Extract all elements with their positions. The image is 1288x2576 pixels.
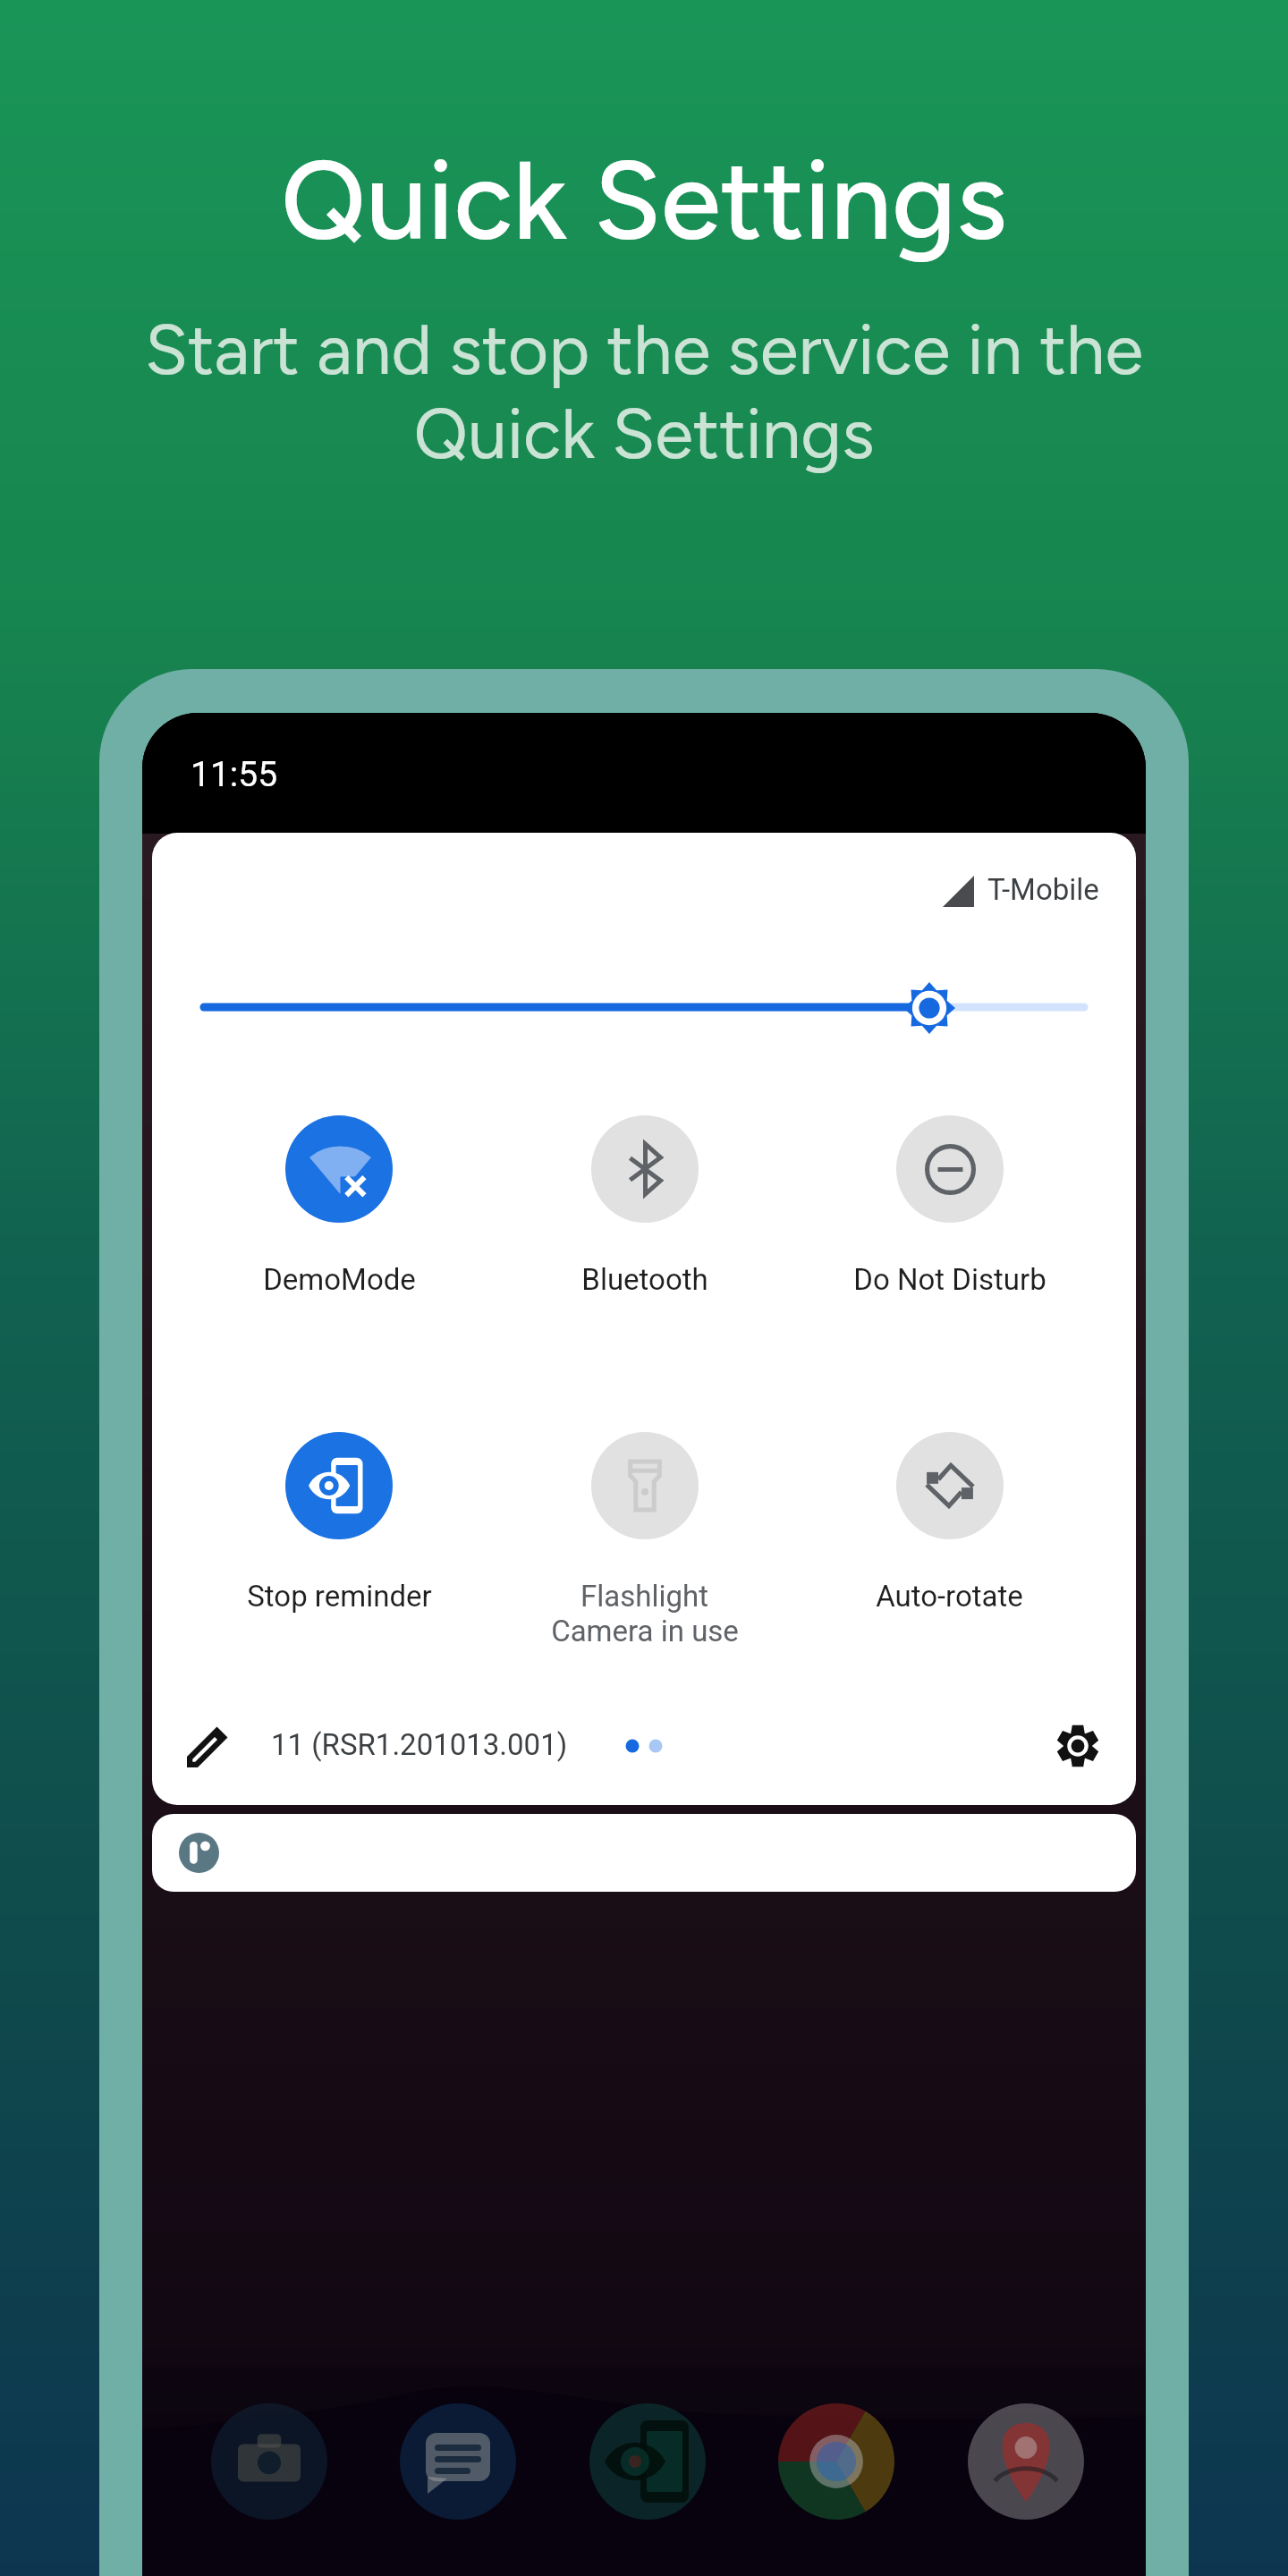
staticText: Stop reminder [247,1579,432,1614]
staticText: 11 (RSR1.201013.001) [271,1727,568,1762]
button[interactable]: Stop reminder [186,1432,492,1614]
staticText: Camera in use [551,1614,739,1648]
button[interactable]: Do Not Disturb [797,1115,1102,1297]
staticText: T-Mobile [987,872,1099,907]
staticText: 11:55 [191,754,278,795]
button[interactable]: Auto-rotate [797,1432,1102,1614]
button[interactable]: DemoMode [186,1115,492,1297]
button[interactable]: Flashlight [492,1432,797,1648]
staticText: DemoMode [263,1262,416,1297]
button[interactable]: Notification [152,1814,1136,1892]
staticText: Do Not Disturb [853,1262,1046,1297]
staticText: Flashlight [580,1579,708,1614]
button[interactable]: Bluetooth [492,1115,797,1297]
staticText: Bluetooth [581,1262,708,1297]
button[interactable]: Brightness [200,995,1088,1020]
button[interactable]: Settings [1056,1724,1099,1767]
staticText: Quick Settings [0,135,1288,266]
button[interactable]: Edit tiles [186,1724,231,1768]
staticText: Auto-rotate [876,1579,1023,1614]
staticText: Start and stop the service in the Quick … [0,308,1288,476]
